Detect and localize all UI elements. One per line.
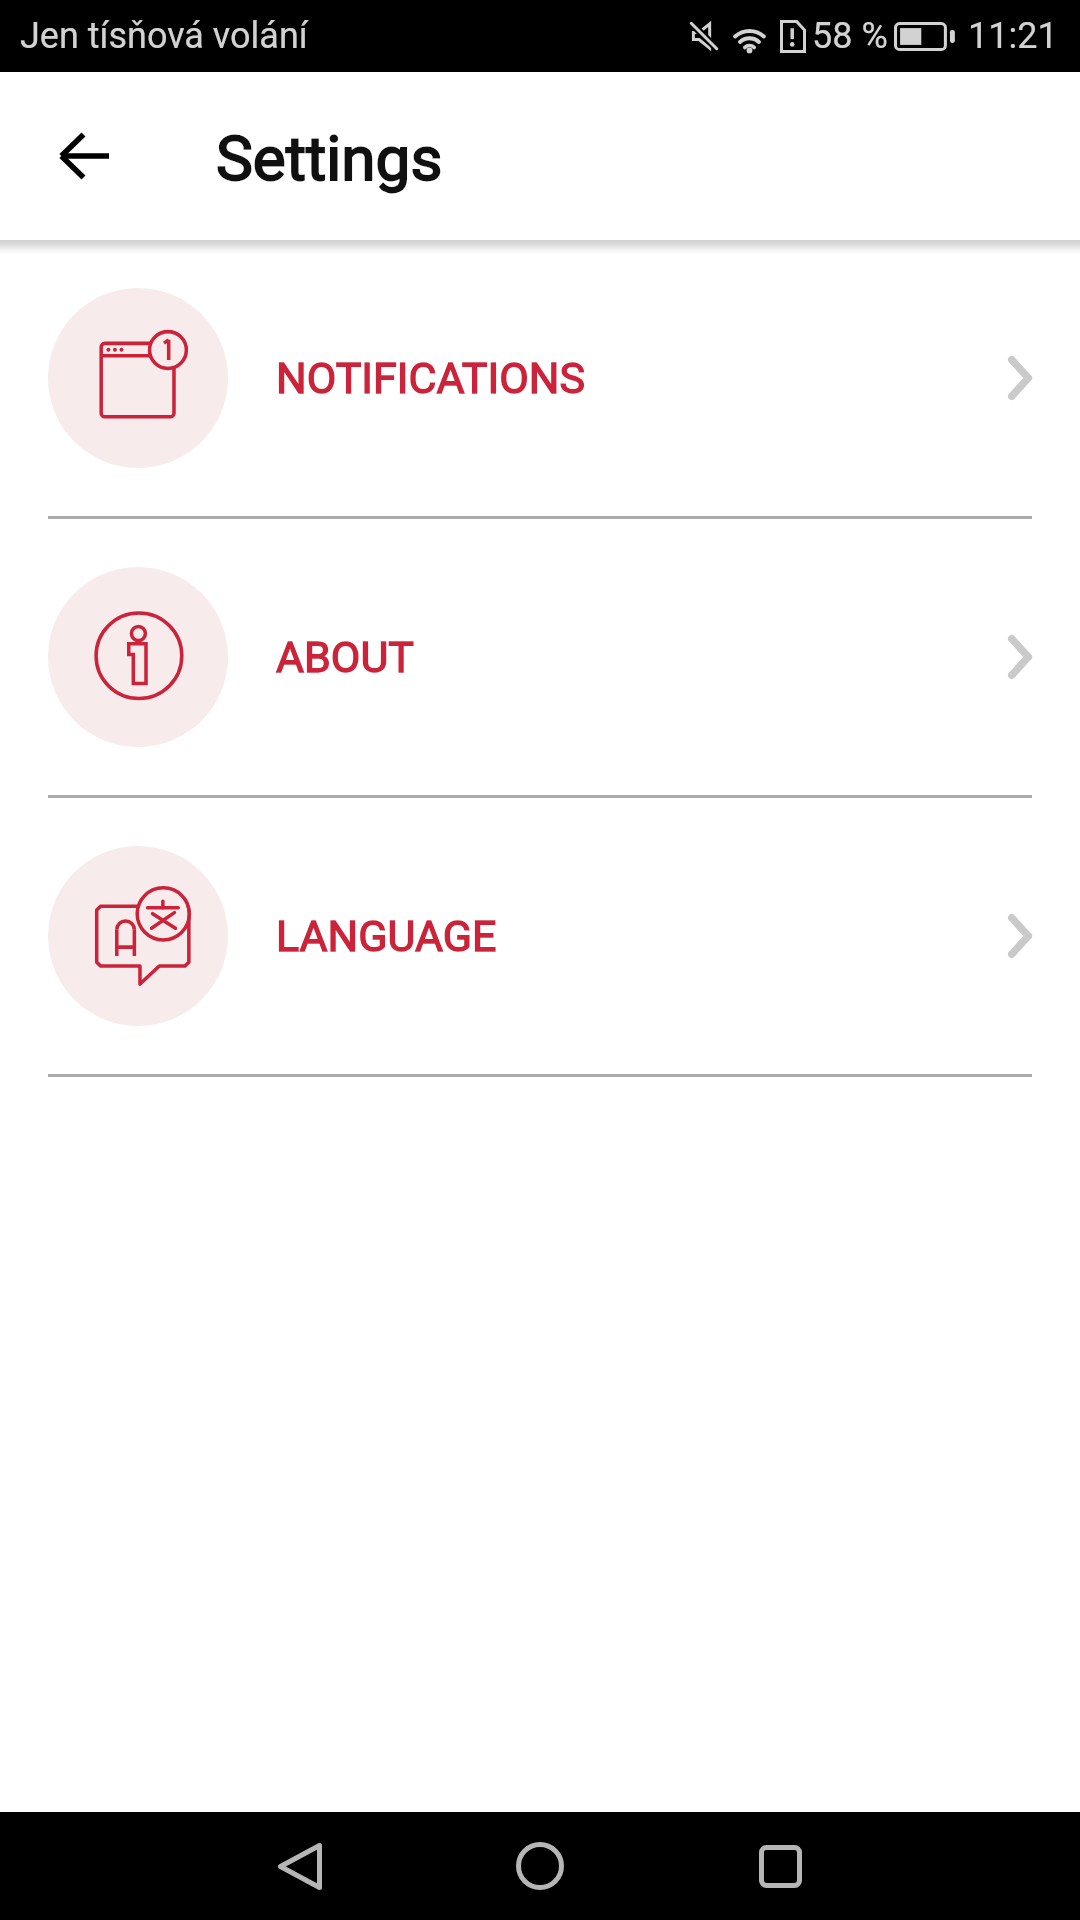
staticText: NOTIFICATIONS: [276, 353, 585, 403]
button[interactable]: LANGUAGE: [0, 798, 1080, 1074]
button[interactable]: NOTIFICATIONS: [0, 240, 1080, 516]
staticText: 11:21: [968, 15, 1058, 57]
button[interactable]: ABOUT: [0, 519, 1080, 795]
staticText: 58 %: [812, 15, 888, 57]
staticText: Settings: [216, 122, 443, 195]
staticText: ABOUT: [276, 632, 414, 682]
staticText: LANGUAGE: [276, 911, 497, 961]
button[interactable]: Navigate up: [36, 108, 132, 204]
staticText: Jen tísňová volání: [20, 15, 308, 57]
button[interactable]: Back: [228, 1812, 372, 1920]
button[interactable]: Home: [468, 1812, 612, 1920]
button[interactable]: Recent apps: [708, 1812, 852, 1920]
